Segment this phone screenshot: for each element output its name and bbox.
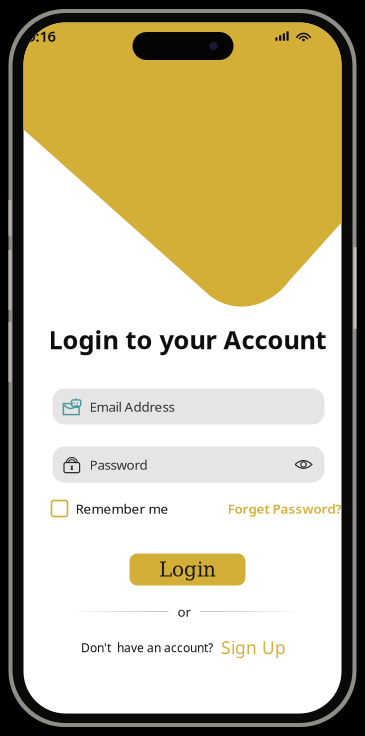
- staticText: Password: [89, 456, 147, 473]
- staticText: Sign Up: [221, 636, 286, 659]
- button[interactable]: Email Address: [52, 388, 324, 424]
- button[interactable]: Remember me: [51, 500, 168, 517]
- staticText: 9:16: [27, 26, 55, 46]
- staticText: Email Address: [89, 398, 174, 415]
- staticText: Login to your Account: [48, 323, 326, 356]
- staticText: or: [177, 603, 191, 620]
- button[interactable]: Login: [129, 553, 245, 585]
- staticText: Don't have an account?: [81, 639, 213, 655]
- staticText: Login: [159, 558, 216, 581]
- button[interactable]: Forget Password?: [227, 500, 341, 517]
- button[interactable]: Sign Up: [221, 636, 286, 659]
- staticText: Forget Password?: [227, 500, 341, 517]
- staticText: Remember me: [75, 500, 168, 517]
- button[interactable]: Show password: [294, 458, 312, 471]
